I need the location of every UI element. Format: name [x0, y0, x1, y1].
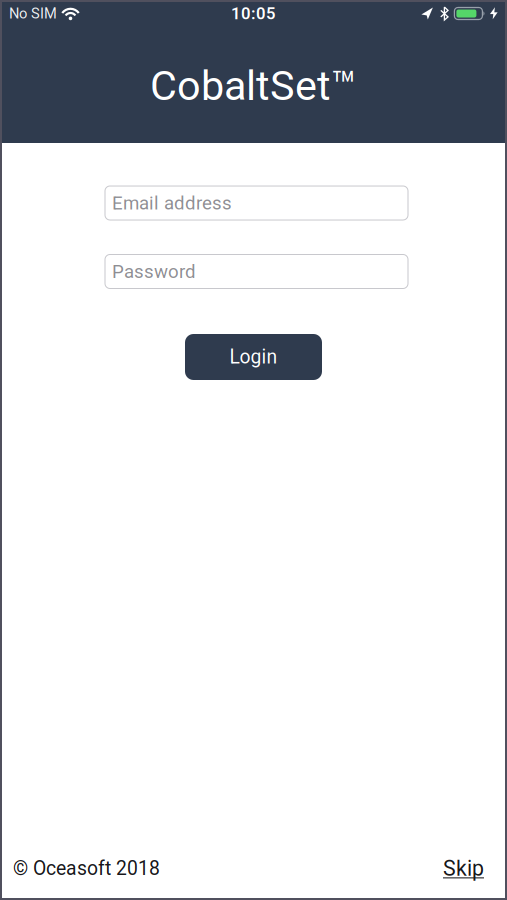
staticText: Skip [443, 856, 484, 881]
staticText: Login [229, 346, 277, 368]
staticText: 10:05 [231, 4, 276, 23]
staticText: CobaltSet™ [150, 62, 357, 110]
button[interactable]: Email address [102, 186, 405, 220]
button[interactable]: Login [185, 334, 322, 380]
staticText: Email address [112, 192, 232, 214]
staticText: Password [112, 261, 196, 282]
button[interactable]: Password [102, 254, 405, 288]
staticText: No SIM [9, 5, 57, 22]
button[interactable]: Skip [443, 856, 484, 881]
staticText: © Oceasoft 2018 [13, 857, 160, 880]
